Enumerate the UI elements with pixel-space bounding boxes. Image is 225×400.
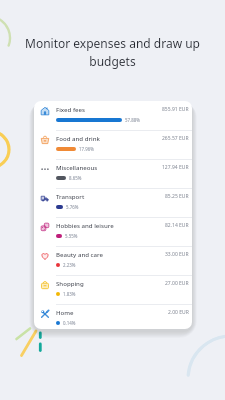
staticText: Monitor expenses and draw up budgets [14,35,211,70]
staticText: Beauty and care [56,250,104,258]
staticText: 17.96% [79,146,94,152]
staticText: Transport [56,192,85,200]
staticText: 57.88% [125,117,140,123]
button[interactable]: Beauty and care [34,246,192,275]
button[interactable]: Shopping [34,275,192,304]
button[interactable]: Miscellaneous [34,159,192,188]
staticText: Home [56,308,74,316]
staticText: 85.25 EUR [165,193,189,200]
button[interactable]: Food and drink [34,130,192,159]
staticText: 5.76% [66,204,79,210]
staticText: Miscellaneous [56,163,98,171]
staticText: 33.00 EUR [165,251,189,258]
staticText: 0.14% [63,320,76,326]
staticText: Fixed fees [56,105,86,113]
staticText: Hobbies and leisure [56,221,114,229]
staticText: 855.91 EUR [162,106,189,113]
staticText: 5.55% [65,233,78,239]
staticText: 2.23% [63,262,76,268]
staticText: 2.00 EUR [168,309,189,316]
staticText: 265.57 EUR [162,135,189,142]
staticText: Food and drink [56,134,100,142]
button[interactable]: Home [34,304,192,329]
staticText: 8.65% [69,175,82,181]
staticText: 27.00 EUR [165,280,189,287]
staticText: 82.14 EUR [165,222,189,229]
staticText: 127.94 EUR [162,164,189,171]
button[interactable]: Hobbies and leisure [34,217,192,246]
staticText: Shopping [56,279,84,287]
button[interactable]: Fixed fees [34,101,192,130]
button[interactable]: Transport [34,188,192,217]
staticText: 1.83% [63,291,76,297]
